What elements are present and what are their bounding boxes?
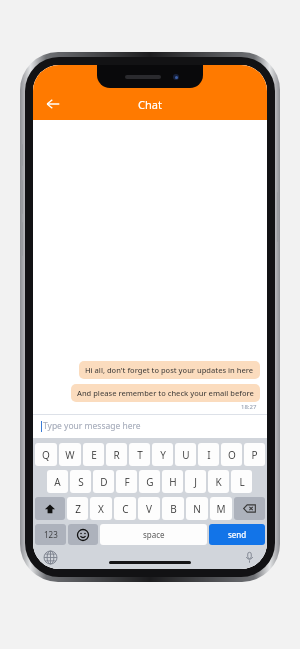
- staticText: R: [113, 448, 120, 462]
- staticText: E: [91, 448, 97, 462]
- staticText: K: [215, 475, 222, 489]
- button[interactable]: Hi all, don't forget to post your update…: [79, 361, 260, 379]
- staticText: Z: [75, 502, 81, 516]
- staticText: U: [182, 448, 190, 462]
- button[interactable]: D: [93, 470, 114, 493]
- button[interactable]: N: [186, 497, 208, 520]
- button[interactable]: Shift: [35, 497, 65, 520]
- staticText: V: [146, 502, 152, 516]
- button[interactable]: Change keyboard: [41, 548, 59, 566]
- button[interactable]: C: [114, 497, 136, 520]
- staticText: C: [122, 502, 129, 516]
- staticText: And please remember to check your email …: [77, 388, 254, 398]
- button[interactable]: Backspace: [234, 497, 265, 520]
- button[interactable]: E: [83, 443, 104, 466]
- button[interactable]: Emoji: [68, 524, 98, 545]
- staticText: N: [193, 502, 201, 516]
- button[interactable]: U: [175, 443, 196, 466]
- staticText: G: [146, 475, 154, 489]
- button[interactable]: X: [90, 497, 112, 520]
- staticText: 18:27: [241, 403, 257, 411]
- staticText: M: [216, 502, 226, 516]
- button[interactable]: Z: [67, 497, 88, 520]
- staticText: Chat: [138, 97, 162, 112]
- staticText: T: [137, 448, 143, 462]
- button[interactable]: W: [59, 443, 81, 466]
- button[interactable]: J: [185, 470, 206, 493]
- staticText: J: [194, 475, 197, 489]
- button[interactable]: I: [198, 443, 219, 466]
- button[interactable]: L: [231, 470, 252, 493]
- button[interactable]: S: [70, 470, 91, 493]
- staticText: Hi all, don't forget to post your update…: [85, 365, 254, 375]
- button[interactable]: Type your message here: [33, 414, 267, 438]
- button[interactable]: B: [162, 497, 184, 520]
- staticText: W: [65, 448, 75, 462]
- button[interactable]: space: [100, 524, 207, 545]
- button[interactable]: M: [210, 497, 232, 520]
- button[interactable]: O: [221, 443, 242, 466]
- button[interactable]: And please remember to check your email …: [71, 384, 260, 402]
- staticText: Y: [160, 448, 166, 462]
- staticText: S: [78, 475, 84, 489]
- staticText: P: [251, 448, 258, 462]
- button[interactable]: A: [47, 470, 68, 493]
- button[interactable]: Y: [152, 443, 173, 466]
- button[interactable]: R: [106, 443, 127, 466]
- staticText: 123: [44, 529, 58, 540]
- staticText: D: [100, 475, 108, 489]
- staticText: F: [124, 475, 130, 489]
- staticText: L: [239, 475, 245, 489]
- staticText: A: [54, 475, 61, 489]
- staticText: I: [207, 448, 211, 462]
- staticText: B: [170, 502, 177, 516]
- button[interactable]: Back: [40, 91, 66, 117]
- button[interactable]: P: [244, 443, 265, 466]
- staticText: H: [169, 475, 177, 489]
- button[interactable]: Voice input: [240, 548, 258, 566]
- staticText: O: [228, 448, 236, 462]
- staticText: Type your message here: [43, 420, 141, 432]
- staticText: Q: [42, 448, 50, 462]
- staticText: X: [98, 502, 104, 516]
- button[interactable]: G: [139, 470, 160, 493]
- staticText: send: [228, 529, 247, 540]
- button[interactable]: H: [162, 470, 183, 493]
- staticText: space: [143, 529, 165, 540]
- button[interactable]: V: [138, 497, 160, 520]
- button[interactable]: 123: [35, 524, 66, 545]
- button[interactable]: F: [116, 470, 137, 493]
- button[interactable]: K: [208, 470, 229, 493]
- button[interactable]: T: [129, 443, 150, 466]
- button[interactable]: send: [209, 524, 265, 545]
- button[interactable]: Q: [35, 443, 57, 466]
